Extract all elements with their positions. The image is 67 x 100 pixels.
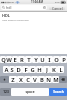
button[interactable]: W [6, 56, 12, 63]
staticText: W [6, 56, 12, 63]
staticText: 84% [55, 1, 60, 4]
button[interactable]: D [15, 66, 22, 73]
button[interactable]: F [22, 66, 29, 73]
button[interactable]: K [50, 66, 57, 73]
button[interactable]: Shift [0, 76, 9, 83]
staticText: E [13, 56, 17, 63]
staticText: K [52, 66, 56, 73]
staticText: I [48, 56, 51, 63]
button[interactable]: I [46, 56, 53, 63]
staticText: Cancel [52, 6, 63, 10]
button[interactable]: V [31, 76, 38, 83]
button[interactable]: B [38, 76, 45, 83]
staticText: 123 [3, 90, 9, 94]
button[interactable]: H [36, 66, 43, 73]
staticText: 11:04 AM [31, 0, 43, 4]
button[interactable]: C [24, 76, 31, 83]
button[interactable]: R [18, 56, 25, 63]
button[interactable]: Z [9, 76, 17, 83]
button[interactable]: A [3, 66, 9, 73]
button[interactable]: U [39, 56, 46, 63]
button[interactable]: G [29, 66, 36, 73]
staticText: D [16, 66, 21, 73]
staticText: J [46, 66, 48, 73]
staticText: U [40, 56, 45, 63]
staticText: H [37, 66, 42, 73]
button[interactable]: Q [0, 56, 6, 63]
staticText: Z [11, 76, 15, 83]
staticText: AT&T [9, 1, 15, 4]
button[interactable]: L [57, 66, 64, 73]
staticText: High Density Lipoprotein [2, 19, 29, 22]
button[interactable]: J [43, 66, 50, 73]
button[interactable]: Search [49, 88, 67, 96]
button[interactable]: E [12, 56, 18, 63]
button[interactable]: P [60, 56, 67, 63]
button[interactable]: N [45, 76, 52, 83]
staticText: N [46, 76, 51, 83]
staticText: X [19, 76, 23, 83]
button[interactable]: O [53, 56, 60, 63]
button[interactable]: hdl [1, 5, 47, 10]
staticText: HDL [2, 13, 10, 18]
button[interactable]: T [25, 56, 32, 63]
button[interactable]: space [11, 88, 49, 96]
button[interactable]: Cancel [49, 6, 65, 10]
staticText: C [26, 76, 30, 83]
staticText: M [53, 76, 59, 83]
staticText: O [54, 56, 59, 63]
staticText: F [24, 66, 28, 73]
staticText: Y [34, 56, 38, 63]
staticText: P [62, 56, 66, 63]
staticText: L [59, 66, 63, 73]
button[interactable]: Y [32, 56, 39, 63]
staticText: Search [53, 90, 64, 94]
staticText: S [10, 66, 14, 73]
staticText: T [27, 56, 31, 63]
button[interactable]: X [17, 76, 24, 83]
staticText: Q [1, 56, 6, 63]
button[interactable]: M [52, 76, 59, 83]
staticText: R [20, 56, 24, 63]
staticText: A [4, 66, 9, 73]
staticText: G [30, 66, 35, 73]
button[interactable]: Backspace [59, 76, 67, 83]
button[interactable]: HDL [0, 12, 67, 23]
staticText: hdl [6, 5, 12, 10]
staticText: B [40, 76, 44, 83]
staticText: V [33, 76, 37, 83]
staticText: space [25, 90, 35, 94]
button[interactable]: Clear [43, 6, 46, 9]
button[interactable]: 123 [0, 88, 11, 96]
button[interactable]: S [9, 66, 15, 73]
